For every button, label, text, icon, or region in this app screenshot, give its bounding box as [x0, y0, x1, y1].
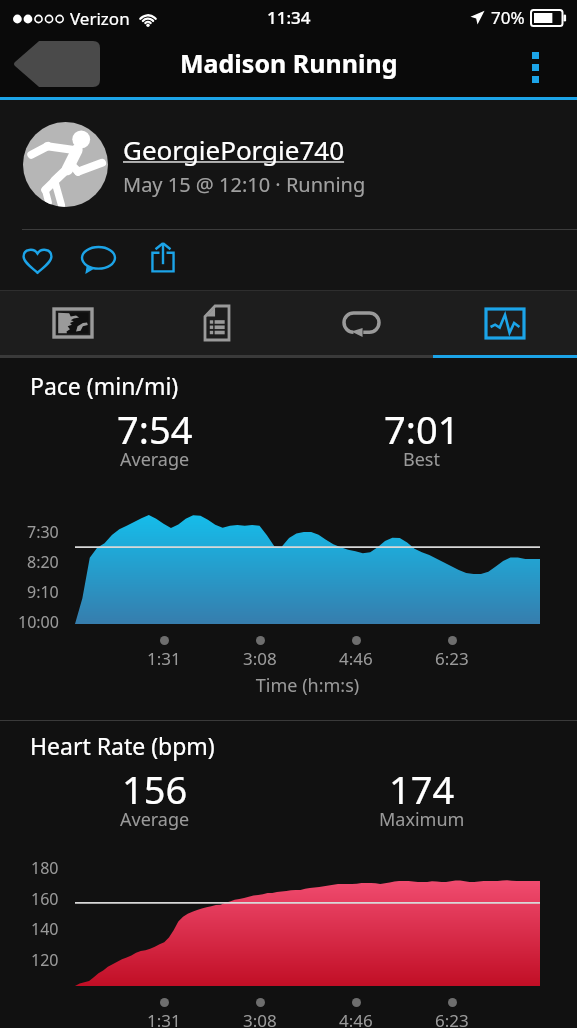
staticText: 6:23	[435, 1009, 469, 1028]
staticText: 9:10	[27, 581, 59, 603]
staticText: 1:31	[147, 1009, 181, 1028]
staticText: Best	[403, 447, 440, 472]
staticText: Verizon	[70, 7, 130, 30]
staticText: 174	[389, 763, 455, 815]
staticText: 3:08	[243, 1009, 277, 1028]
staticText: 10:00	[18, 611, 59, 633]
button[interactable]: More options	[514, 43, 556, 91]
staticText: 6:23	[435, 647, 469, 670]
button[interactable]: Comment	[80, 242, 116, 278]
button[interactable]: Map	[0, 291, 145, 355]
staticText: 156	[122, 763, 188, 815]
staticText: 180	[31, 857, 59, 879]
staticText: 7:01	[384, 403, 460, 455]
staticText: 140	[31, 918, 59, 940]
staticText: 120	[31, 949, 59, 971]
button[interactable]: Back	[13, 41, 100, 87]
staticText: May 15 @ 12:10 · Running	[123, 171, 366, 198]
staticText: Heart Rate (bpm)	[30, 730, 215, 761]
button[interactable]: Like	[20, 243, 54, 277]
staticText: 3:08	[243, 647, 277, 670]
button[interactable]: Laps	[289, 291, 433, 355]
staticText: Time (h:m:s)	[75, 673, 540, 698]
button[interactable]: GeorgiePorgie740	[0, 100, 577, 229]
staticText: 1:31	[147, 647, 181, 670]
staticText: 160	[31, 888, 59, 910]
staticText: 11:34	[267, 6, 311, 29]
button[interactable]: Charts	[433, 291, 577, 355]
staticText: GeorgiePorgie740	[123, 132, 345, 167]
staticText: Maximum	[379, 807, 465, 832]
staticText: 70%	[491, 6, 525, 29]
staticText: Pace (min/mi)	[30, 370, 179, 401]
staticText: 4:46	[339, 1009, 373, 1028]
staticText: Average	[120, 447, 190, 472]
button[interactable]: Details	[145, 291, 289, 355]
staticText: 4:46	[339, 647, 373, 670]
button[interactable]: Share	[145, 239, 181, 275]
staticText: 7:54	[117, 403, 193, 455]
staticText: 8:20	[27, 551, 59, 573]
staticText: Average	[120, 807, 190, 832]
staticText: 7:30	[27, 521, 59, 543]
staticText: Madison Running	[180, 46, 398, 80]
